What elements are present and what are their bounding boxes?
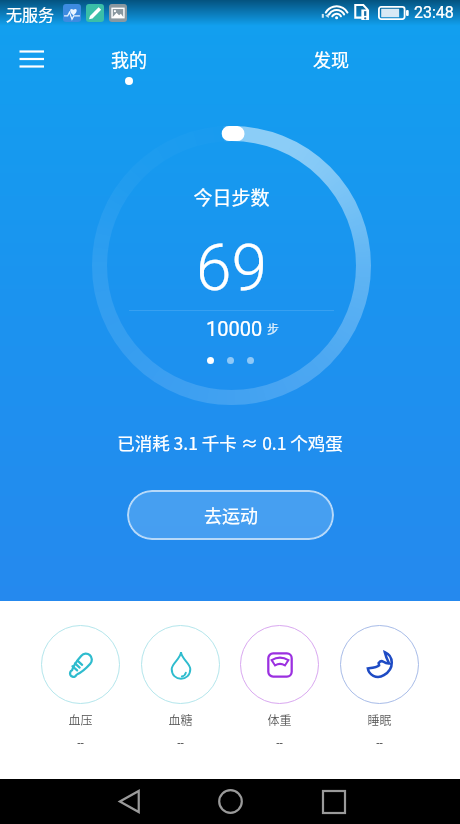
staticText: 今日步数 — [92, 183, 371, 211]
button[interactable]: Home — [203, 779, 258, 824]
staticText: 我的 — [111, 46, 147, 72]
staticText: 血压 — [31, 711, 130, 728]
staticText: 10000 — [206, 317, 263, 340]
staticText: 69 — [92, 231, 371, 306]
staticText: 睡眠 — [330, 711, 429, 728]
button[interactable]: Recents — [306, 779, 361, 824]
button[interactable]: 去运动 — [127, 490, 334, 540]
staticText: 步 — [267, 320, 280, 337]
button[interactable]: 睡眠 — [330, 601, 429, 761]
staticText: -- — [31, 736, 130, 750]
button[interactable]: Back — [102, 779, 157, 824]
staticText: -- — [330, 736, 429, 750]
staticText: 体重 — [230, 711, 329, 728]
staticText: 去运动 — [204, 502, 258, 528]
staticText: -- — [131, 736, 230, 750]
button[interactable]: 我的 — [89, 26, 169, 86]
staticText: 血糖 — [131, 711, 230, 728]
button[interactable]: 发现 — [291, 26, 371, 86]
staticText: -- — [230, 736, 329, 750]
button[interactable]: 血压 — [31, 601, 130, 761]
button[interactable]: Menu — [7, 34, 55, 82]
staticText: 已消耗 3.1 千卡 ≈ 0.1 个鸡蛋 — [0, 430, 460, 455]
staticText: 23:48 — [414, 3, 454, 22]
button[interactable]: 体重 — [230, 601, 329, 761]
staticText: 无服务 — [6, 2, 55, 25]
button[interactable]: 血糖 — [131, 601, 230, 761]
staticText: 发现 — [313, 46, 349, 72]
